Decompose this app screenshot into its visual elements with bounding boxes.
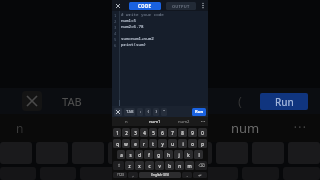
button[interactable]: w <box>122 139 130 148</box>
button[interactable]: num1 <box>140 117 169 126</box>
staticText: 2 <box>125 130 128 136</box>
button[interactable]: l <box>194 150 203 159</box>
staticText: 5 <box>152 130 155 136</box>
button[interactable]: p <box>198 139 207 148</box>
button[interactable]: t <box>149 139 157 148</box>
button[interactable]: 7 <box>168 128 177 137</box>
button[interactable]: Shift <box>113 161 124 170</box>
button[interactable]: e <box>131 139 139 148</box>
staticText: j <box>178 152 180 158</box>
button[interactable]: x <box>135 161 144 170</box>
staticText: 0 <box>201 130 204 136</box>
button[interactable]: r <box>140 139 148 148</box>
staticText: " <box>163 109 166 115</box>
button[interactable]: b <box>165 161 174 170</box>
staticText: 5 <box>114 37 117 42</box>
button[interactable]: n <box>112 117 140 126</box>
button[interactable]: u <box>168 139 177 148</box>
staticText: 6 <box>114 43 117 48</box>
button[interactable]: z <box>125 161 134 170</box>
staticText: a <box>120 152 123 158</box>
button[interactable]: m <box>185 161 194 170</box>
staticText: 7 <box>171 130 174 136</box>
staticText: # write your code <box>121 12 164 18</box>
button[interactable]: v <box>155 161 164 170</box>
staticText: num1=5 <box>121 18 137 24</box>
button[interactable]: num2 <box>169 117 198 126</box>
staticText: f <box>148 152 150 158</box>
button[interactable]: d <box>135 150 143 159</box>
button[interactable]: g <box>154 150 163 159</box>
button[interactable]: TAB <box>124 108 135 116</box>
button[interactable]: ( <box>145 108 151 116</box>
button[interactable]: 0 <box>198 128 207 137</box>
button[interactable]: i <box>178 139 187 148</box>
button[interactable]: f <box>144 150 153 159</box>
staticText: k <box>187 152 190 158</box>
button[interactable]: CODE <box>129 2 161 10</box>
button[interactable]: o <box>188 139 197 148</box>
button[interactable]: 4 <box>140 128 148 137</box>
staticText: num2 <box>178 119 190 125</box>
staticText: t <box>152 141 154 147</box>
staticText: y <box>161 141 164 147</box>
button[interactable]: j <box>174 150 183 159</box>
staticText: ⌫ <box>198 163 205 168</box>
staticText: Run <box>195 109 204 115</box>
button[interactable]: 5 <box>149 128 157 137</box>
button[interactable]: : <box>137 108 143 116</box>
button[interactable]: Backspace <box>195 161 207 170</box>
button[interactable]: 8 <box>178 128 187 137</box>
button[interactable]: More suggestions <box>198 117 208 126</box>
button[interactable]: More options <box>200 1 206 10</box>
button[interactable]: a <box>117 150 125 159</box>
staticText: h <box>167 152 170 158</box>
staticText: u <box>171 141 174 147</box>
button[interactable]: 2 <box>122 128 130 137</box>
button[interactable]: q <box>113 139 121 148</box>
button[interactable]: c <box>145 161 154 170</box>
staticText: d <box>138 152 141 158</box>
staticText: g <box>157 152 160 158</box>
button[interactable]: 3 <box>131 128 139 137</box>
staticText: b <box>168 163 171 169</box>
button[interactable]: . <box>182 172 192 178</box>
staticText: n <box>16 120 24 136</box>
button[interactable]: Run <box>192 108 206 116</box>
button[interactable]: English (US) <box>139 172 181 178</box>
staticText: sum=num1+num2 <box>121 36 154 42</box>
staticText: ( <box>238 92 242 110</box>
staticText: English (US) <box>151 173 169 177</box>
button[interactable]: h <box>164 150 173 159</box>
staticText: ⇧ <box>117 163 121 168</box>
button[interactable]: 6 <box>158 128 167 137</box>
button[interactable]: , <box>128 172 138 178</box>
button[interactable]: y <box>158 139 167 148</box>
staticText: 1 <box>116 130 119 136</box>
staticText: 3 <box>134 130 137 136</box>
button[interactable]: Enter <box>193 172 207 178</box>
staticText: r <box>143 141 145 147</box>
staticText: x <box>138 163 141 169</box>
button[interactable]: ?123 <box>113 172 127 178</box>
staticText: , <box>132 172 134 178</box>
staticText: ↵ <box>198 173 202 178</box>
button[interactable]: Close toolbar <box>114 108 122 116</box>
staticText: v <box>158 163 161 169</box>
button[interactable]: k <box>184 150 193 159</box>
staticText: z <box>128 163 131 169</box>
button[interactable]: 1 <box>113 128 121 137</box>
button[interactable]: OUTPUT <box>166 2 196 10</box>
staticText: q <box>116 141 119 147</box>
button[interactable]: " <box>161 108 167 116</box>
staticText: . <box>186 172 188 178</box>
button[interactable]: 9 <box>188 128 197 137</box>
button[interactable]: s <box>126 150 134 159</box>
button[interactable]: n <box>175 161 184 170</box>
button[interactable]: ) <box>153 108 159 116</box>
staticText: TAB <box>62 94 82 109</box>
button[interactable]: Close <box>114 2 122 10</box>
staticText: 1 <box>114 13 117 18</box>
staticText: s <box>129 152 132 158</box>
staticText: ) <box>155 109 158 115</box>
